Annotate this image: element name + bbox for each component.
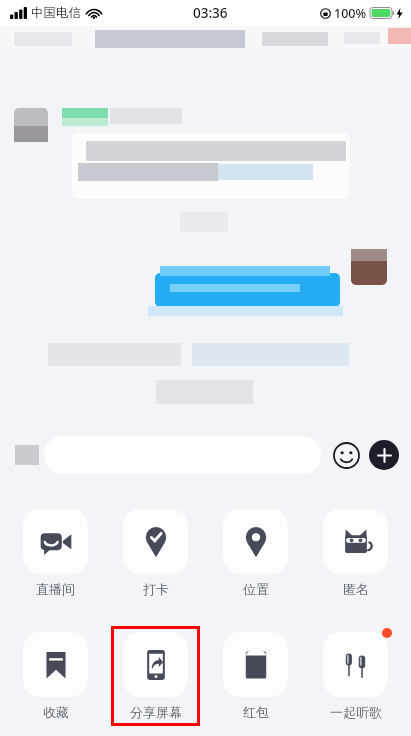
button[interactable]: Emoji [331,440,361,470]
staticText: 一起听歌 [330,704,382,720]
staticText: 分享屏幕 [130,704,182,720]
staticText: 100% [334,5,367,22]
button[interactable]: 收藏 [11,626,100,726]
button[interactable]: 红包 [211,626,300,726]
button[interactable]: Voice input [12,440,42,470]
staticText: 收藏 [43,704,69,720]
button[interactable]: More [369,440,399,470]
staticText: 红包 [243,704,269,720]
staticText: 直播间 [36,581,75,597]
button[interactable]: 打卡 [111,503,200,603]
button[interactable]: 位置 [211,503,300,603]
button[interactable]: 分享屏幕 [111,626,200,726]
staticText: 03:36 [193,4,228,22]
button[interactable]: 匿名 [311,503,400,603]
staticText: 中国电信 [31,5,81,21]
staticText: 位置 [243,581,269,597]
staticText: 匿名 [343,581,369,597]
staticText: 打卡 [143,581,169,597]
button[interactable]: 一起听歌 [311,626,400,726]
button[interactable]: 直播间 [11,503,100,603]
